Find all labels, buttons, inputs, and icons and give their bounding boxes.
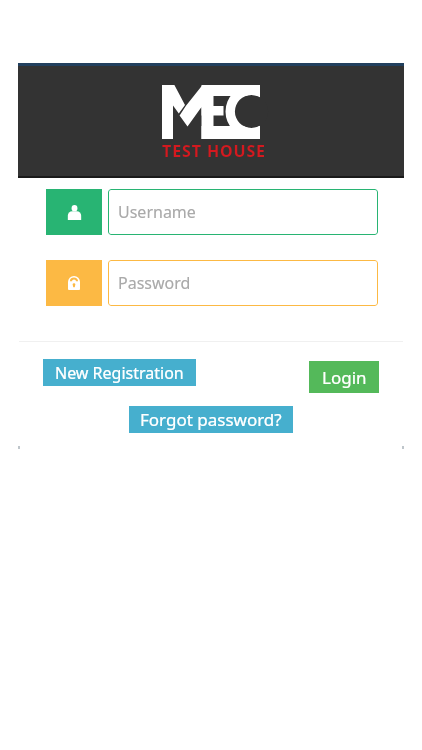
button[interactable]: Password: [108, 260, 378, 306]
staticText: HOUSE: [207, 140, 266, 162]
button[interactable]: Username: [46, 189, 102, 235]
button[interactable]: Username: [108, 189, 378, 235]
staticText: TEST: [162, 140, 202, 162]
button[interactable]: Forgot password?: [129, 406, 293, 433]
staticText: Login: [322, 366, 367, 389]
staticText: Forgot password?: [140, 408, 282, 431]
button[interactable]: Login: [309, 361, 379, 393]
button[interactable]: New Registration: [43, 359, 196, 386]
staticText: New Registration: [55, 362, 184, 384]
button[interactable]: Password: [46, 260, 102, 306]
staticText: Username: [118, 201, 196, 223]
staticText: Password: [118, 272, 191, 294]
